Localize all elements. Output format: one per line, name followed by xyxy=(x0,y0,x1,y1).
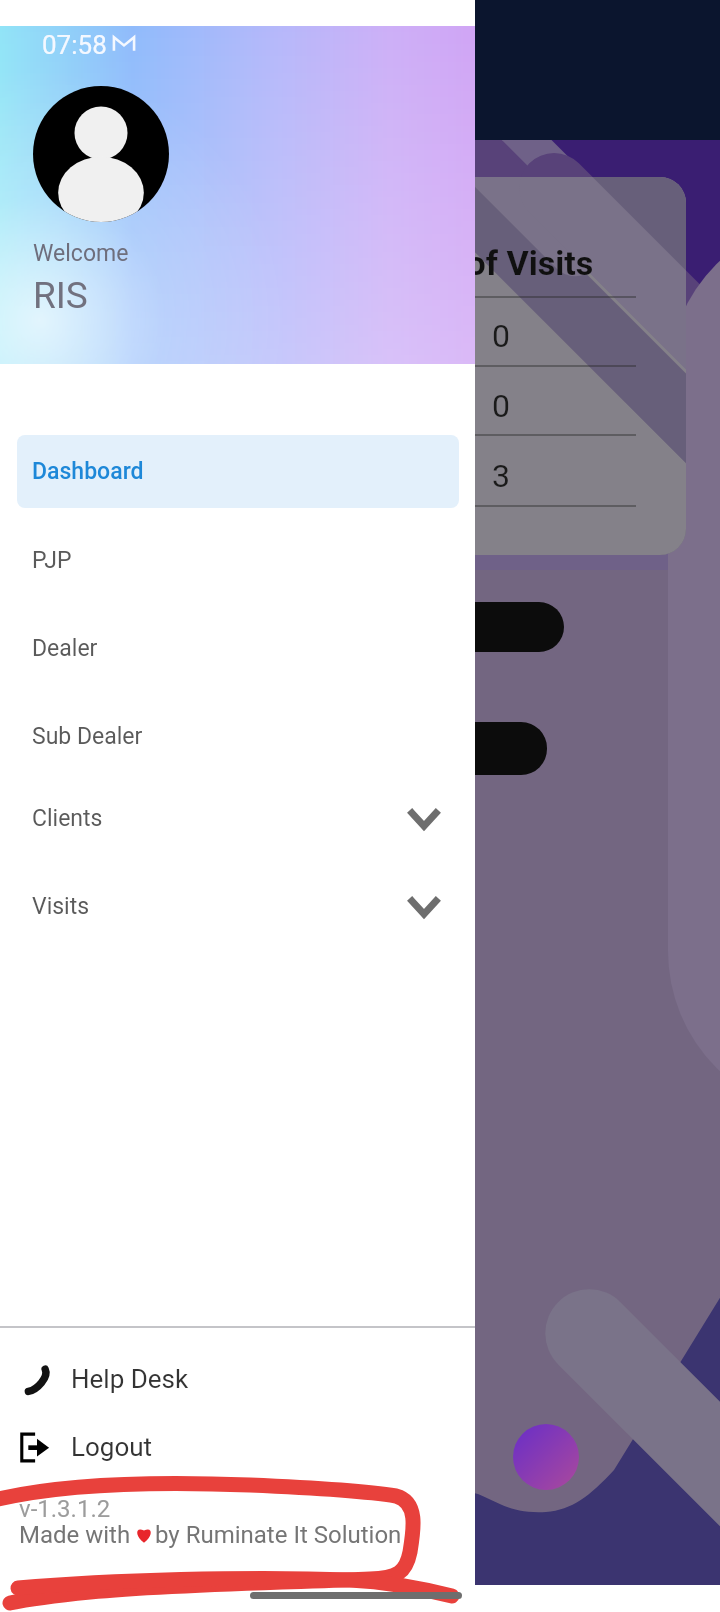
button[interactable]: PJP xyxy=(0,524,475,596)
staticText: Made with xyxy=(19,1521,131,1549)
staticText: No. of Visits xyxy=(405,243,594,283)
staticText: 0 xyxy=(492,317,510,355)
staticText: Dashboard xyxy=(32,458,144,485)
staticText: Sub Dealer xyxy=(32,723,143,750)
staticText: by Ruminate It Solution xyxy=(155,1521,402,1549)
staticText: 0 xyxy=(492,387,510,425)
staticText: PJP xyxy=(32,547,72,574)
staticText: Help Desk xyxy=(71,1364,189,1394)
button[interactable]: Sub Dealer xyxy=(0,700,475,772)
button[interactable]: Help Desk xyxy=(0,1345,475,1413)
staticText: RIS xyxy=(33,274,88,317)
button[interactable]: Visits xyxy=(0,872,475,940)
staticText: Dealer xyxy=(32,635,98,662)
staticText: Visits xyxy=(32,893,90,920)
button[interactable]: Dealer xyxy=(0,612,475,684)
staticText: 3 xyxy=(492,457,510,495)
staticText: 07:58 xyxy=(42,30,107,60)
staticText: Clients xyxy=(32,805,103,832)
other: Logout xyxy=(19,1432,50,1463)
other: Help Desk xyxy=(20,1365,50,1395)
staticText: Welcome xyxy=(33,240,129,267)
button[interactable]: Clients xyxy=(0,784,475,852)
button[interactable]: Dashboard xyxy=(17,435,459,508)
button[interactable]: Logout xyxy=(0,1413,475,1481)
staticText: Logout xyxy=(71,1432,153,1462)
staticText: v-1.3.1.2 xyxy=(19,1495,111,1523)
